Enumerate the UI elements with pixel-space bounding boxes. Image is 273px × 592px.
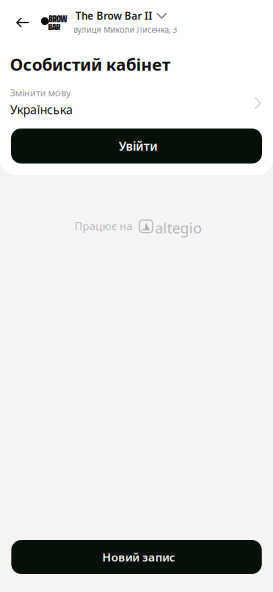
staticText: Особистий кабінет [10,53,170,76]
button[interactable]: Увійти [11,128,262,163]
staticText: The Brow Bar II [75,9,152,23]
staticText: вулиця Миколи Лисенка, 3 [73,24,177,35]
staticText: BROW [48,12,67,26]
button[interactable]: The Brow Bar II [64,9,179,35]
button[interactable]: Новий запис [11,540,262,574]
staticText: Змінити мову [10,86,71,99]
button[interactable]: Змінити мову [0,87,273,117]
staticText: Новий запис [102,549,175,565]
staticText: Українська [10,101,73,118]
staticText: BAR [48,20,60,34]
staticText: Увійти [119,138,158,154]
staticText: altegio [155,218,202,238]
button[interactable]: Back [8,7,38,37]
staticText: Працює на [74,218,132,233]
